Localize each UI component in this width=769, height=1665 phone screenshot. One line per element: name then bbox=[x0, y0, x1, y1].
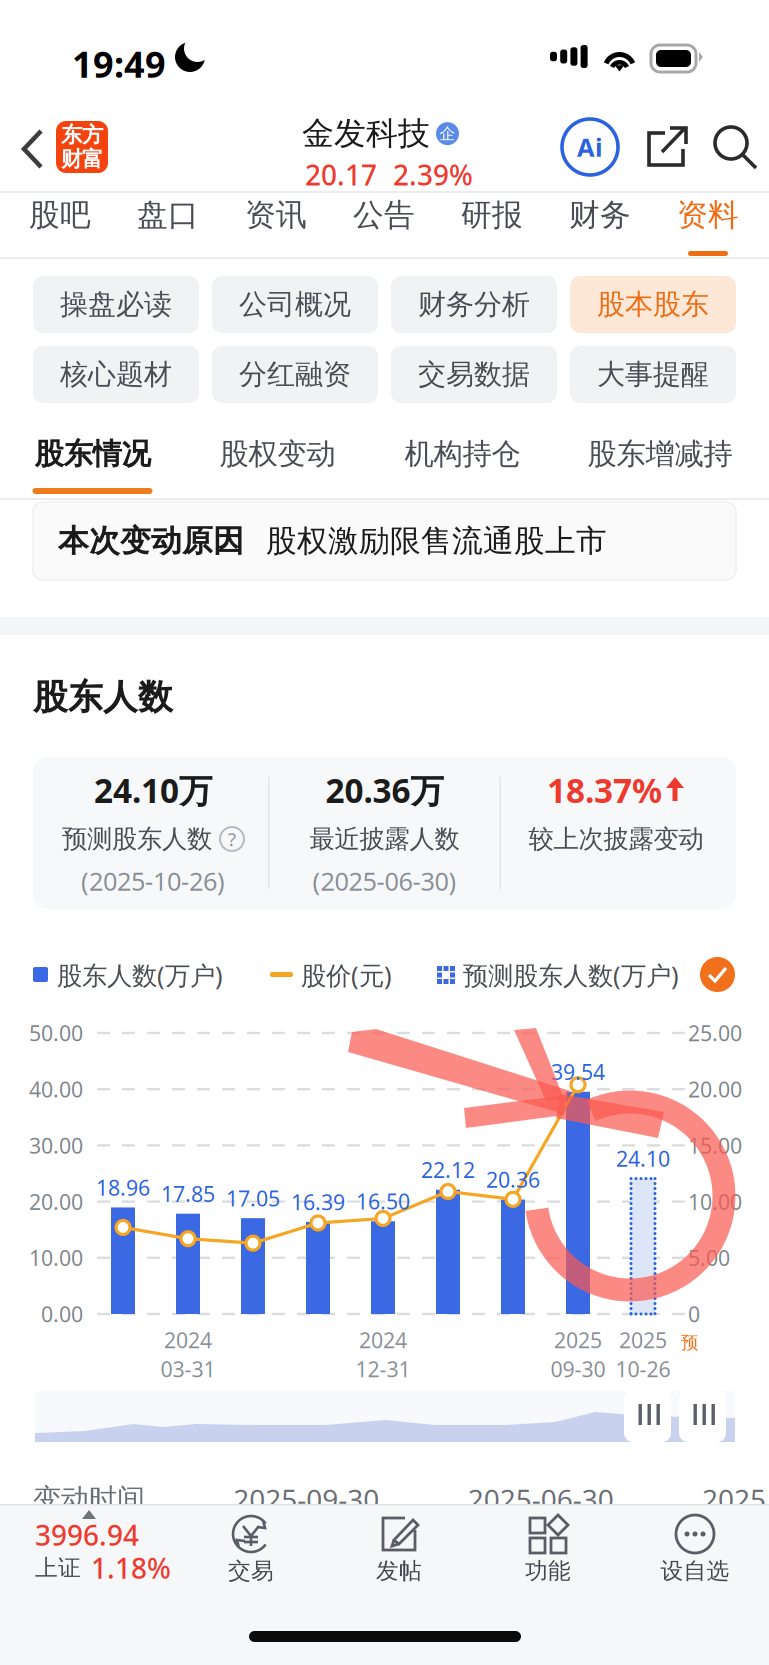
staticText: 股东人数 bbox=[33, 676, 173, 719]
staticText: 18.96 bbox=[96, 1173, 150, 1202]
staticText: 2025 bbox=[554, 1326, 602, 1354]
staticText: 股权变动 bbox=[219, 436, 335, 472]
staticText: 17.05 bbox=[226, 1184, 280, 1212]
staticText: 10.00 bbox=[688, 1187, 742, 1216]
staticText: 预测股东人数(万户) bbox=[463, 958, 679, 992]
button[interactable]: 股权变动 bbox=[185, 432, 370, 498]
staticText: 资料 bbox=[677, 196, 739, 234]
button[interactable]: 操盘必读 bbox=[33, 276, 199, 333]
staticText: 24.10 bbox=[616, 1144, 670, 1173]
staticText: 变动时间 bbox=[33, 1482, 145, 1516]
staticText: 20.17 bbox=[305, 156, 377, 193]
staticText: 5.00 bbox=[688, 1244, 730, 1272]
staticText: 50.00 bbox=[29, 1019, 83, 1047]
staticText: ? bbox=[228, 827, 236, 851]
staticText: 财务分析 bbox=[418, 287, 530, 322]
staticText: 预 bbox=[681, 1332, 698, 1353]
staticText: (2025-06-30) bbox=[312, 864, 456, 898]
staticText: 功能 bbox=[525, 1557, 571, 1585]
staticText: 大事提醒 bbox=[597, 357, 709, 392]
staticText: 股价(元) bbox=[301, 958, 392, 992]
staticText: 1.18% bbox=[91, 1549, 171, 1587]
staticText: 分红融资 bbox=[239, 357, 351, 392]
staticText: 公告 bbox=[353, 196, 415, 234]
button[interactable]: 交易 bbox=[186, 1512, 316, 1592]
staticText: 2024 bbox=[359, 1326, 407, 1354]
button[interactable]: Shanghai Composite 3996.94 up 1.18 perce… bbox=[10, 1514, 190, 1590]
staticText: 股本股东 bbox=[597, 287, 709, 322]
staticText: 39.54 bbox=[551, 1058, 605, 1086]
button[interactable]: Search bbox=[710, 122, 762, 174]
staticText: 2025 bbox=[619, 1326, 667, 1354]
staticText: 发帖 bbox=[376, 1557, 422, 1585]
button[interactable]: Back bbox=[8, 120, 56, 178]
staticText: 核心题材 bbox=[60, 357, 172, 392]
button[interactable]: 股东增减持 bbox=[555, 432, 765, 498]
button[interactable]: 分红融资 bbox=[212, 346, 378, 403]
staticText: 09-30 bbox=[550, 1355, 605, 1383]
button[interactable]: East Money bbox=[56, 121, 108, 173]
staticText: 公司概况 bbox=[239, 287, 351, 322]
staticText: 2025-06-30 bbox=[468, 1480, 614, 1518]
staticText: 研报 bbox=[461, 196, 523, 234]
button[interactable]: 资讯 bbox=[222, 194, 330, 260]
staticText: 金发科技 bbox=[302, 114, 430, 153]
button[interactable]: 功能 bbox=[483, 1512, 613, 1592]
staticText: 股权激励限售流通股上市 bbox=[266, 522, 607, 560]
staticText: 0.00 bbox=[41, 1300, 83, 1328]
button[interactable]: 财务分析 bbox=[391, 276, 557, 333]
button[interactable]: 股本股东 bbox=[570, 276, 736, 333]
button[interactable]: 股东情况 bbox=[0, 432, 185, 498]
button[interactable]: Toggle prediction series bbox=[700, 957, 735, 992]
staticText: 较上次披露变动 bbox=[528, 823, 703, 854]
button[interactable]: Range start handle bbox=[624, 1390, 671, 1442]
staticText: 财富 bbox=[61, 146, 103, 172]
button[interactable]: 股吧 bbox=[6, 194, 114, 260]
staticText: 17.85 bbox=[161, 1179, 215, 1208]
button[interactable]: Range end handle bbox=[679, 1390, 726, 1442]
button[interactable]: 发帖 bbox=[334, 1512, 464, 1592]
staticText: 股东增减持 bbox=[587, 436, 732, 472]
staticText: 交易数据 bbox=[418, 357, 530, 392]
button[interactable]: 大事提醒 bbox=[570, 346, 736, 403]
staticText: 操盘必读 bbox=[60, 287, 172, 322]
staticText: 设自选 bbox=[660, 1557, 729, 1585]
staticText: 03-31 bbox=[160, 1355, 215, 1383]
button[interactable]: 机构持仓 bbox=[370, 432, 555, 498]
staticText: 18.37% bbox=[547, 768, 662, 812]
button[interactable]: 资料 bbox=[654, 194, 762, 260]
staticText: 最近披露人数 bbox=[309, 823, 459, 854]
button[interactable]: 盘口 bbox=[114, 194, 222, 260]
button[interactable]: 公告 bbox=[330, 194, 438, 260]
button[interactable]: 财务 bbox=[546, 194, 654, 260]
staticText: 25.00 bbox=[688, 1019, 742, 1047]
staticText: 本次变动原因 bbox=[58, 522, 244, 560]
button[interactable]: AI assistant bbox=[562, 119, 618, 175]
staticText: 上证 bbox=[35, 1554, 81, 1582]
button[interactable]: 研报 bbox=[438, 194, 546, 260]
staticText: 40.00 bbox=[29, 1075, 83, 1103]
staticText: 股东人数(万户) bbox=[57, 958, 223, 992]
staticText: 10-26 bbox=[615, 1355, 670, 1383]
button[interactable]: 设自选 bbox=[630, 1512, 760, 1592]
staticText: 机构持仓 bbox=[404, 436, 520, 472]
staticText: 股吧 bbox=[29, 196, 91, 234]
staticText: 16.50 bbox=[356, 1187, 410, 1215]
staticText: 15.00 bbox=[688, 1131, 742, 1159]
staticText: 30.00 bbox=[29, 1131, 83, 1159]
staticText: 企 bbox=[439, 124, 455, 143]
staticText: 19:49 bbox=[72, 40, 166, 88]
staticText: (2025-10-26) bbox=[81, 864, 225, 898]
staticText: 财务 bbox=[569, 196, 631, 234]
button[interactable]: Share bbox=[643, 122, 693, 174]
staticText: 盘口 bbox=[137, 196, 199, 234]
staticText: 3996.94 bbox=[35, 1516, 139, 1554]
staticText: 24.10万 bbox=[94, 768, 212, 812]
button[interactable]: 核心题材 bbox=[33, 346, 199, 403]
staticText: 20.00 bbox=[688, 1075, 742, 1103]
staticText: 20.36万 bbox=[325, 768, 443, 812]
staticText: 2025-09-30 bbox=[233, 1480, 379, 1518]
button[interactable]: 交易数据 bbox=[391, 346, 557, 403]
button[interactable]: 公司概况 bbox=[212, 276, 378, 333]
staticText: 0 bbox=[688, 1300, 700, 1328]
